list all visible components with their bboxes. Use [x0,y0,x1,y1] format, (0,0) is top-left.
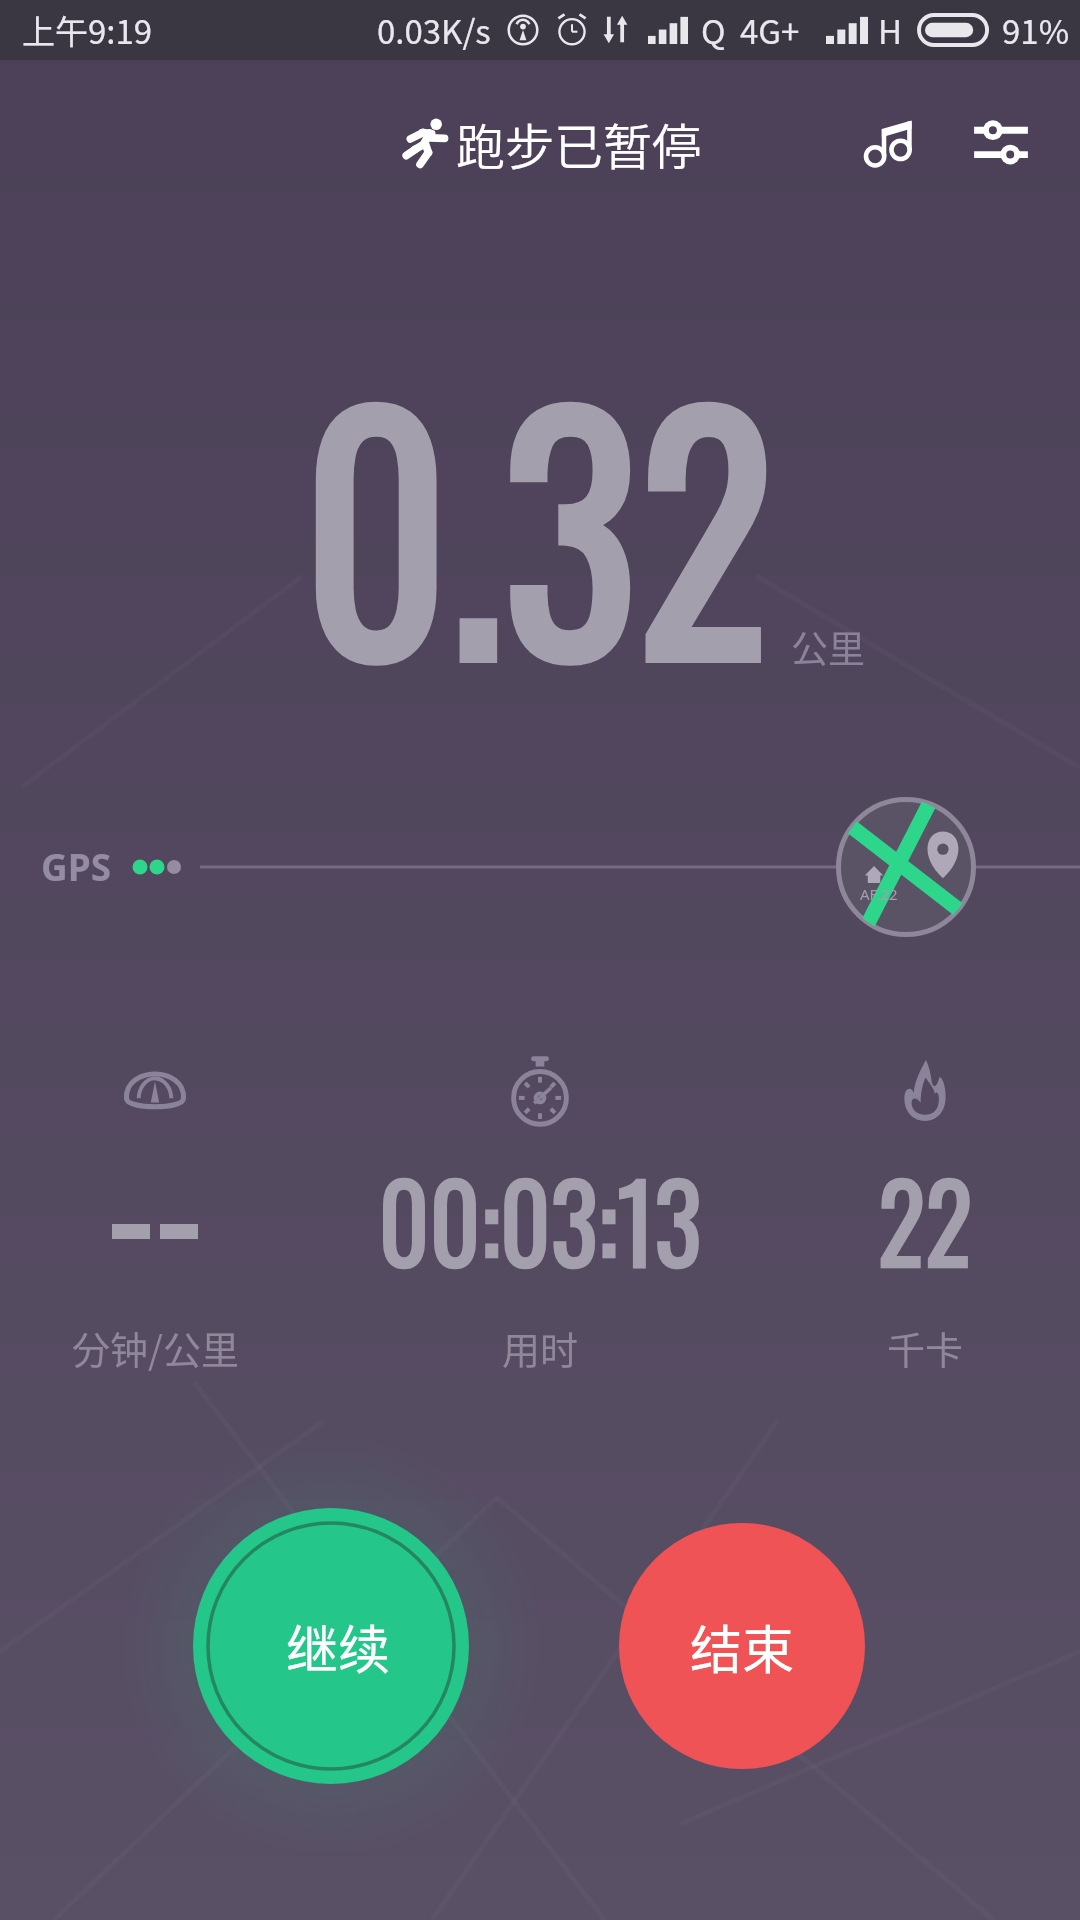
button[interactable]: Music [844,96,936,188]
staticText: 分钟/公里 [72,1320,239,1375]
button[interactable]: 结束 [619,1523,865,1769]
staticText: 跑步已暂停 [456,108,702,179]
staticText: Q [701,6,726,54]
staticText: AF.22 [860,884,898,904]
staticText: 结束 [690,1609,795,1684]
button[interactable]: Settings [955,96,1047,188]
button[interactable]: Map [835,796,977,938]
staticText: 上午9:19 [22,6,153,54]
staticText: 22 [877,1138,972,1298]
staticText: 0.32 [303,289,773,748]
button[interactable]: 继续 [193,1508,469,1784]
staticText: 千卡 [887,1320,964,1375]
staticText: 0.03K/s [377,6,491,54]
staticText: 公里 [791,620,865,674]
staticText: 22 [877,1138,972,1298]
staticText: 4G+ [740,6,800,54]
staticText: GPS [41,841,112,891]
staticText: 继续 [286,1609,391,1684]
staticText: 用时 [502,1320,579,1375]
staticText: 0.32 [303,289,773,748]
staticText: 91% [1002,6,1070,54]
staticText: 00:03:13 [378,1138,702,1298]
staticText: H [878,6,903,54]
staticText: 00:03:13 [378,1138,702,1298]
